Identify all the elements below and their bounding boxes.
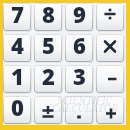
button[interactable]: multiply <box>96 34 126 64</box>
staticText: 9 <box>73 3 86 27</box>
staticText: 3 <box>73 65 86 89</box>
button[interactable]: dot <box>65 96 95 126</box>
button[interactable]: 6 <box>65 34 95 64</box>
button[interactable]: minus <box>96 65 126 95</box>
button[interactable]: 9 <box>65 3 95 33</box>
staticText: 0 <box>11 96 24 120</box>
staticText: 4 <box>11 34 24 58</box>
staticText: 5 <box>42 34 55 58</box>
button[interactable]: plusminus <box>34 96 64 126</box>
staticText: SCIENTIFIC <box>57 93 112 107</box>
staticText: 7 <box>11 3 24 27</box>
staticText: 2 <box>42 65 55 89</box>
staticText: 1 <box>11 65 24 89</box>
button[interactable]: 5 <box>34 34 64 64</box>
button[interactable]: 1 <box>3 65 33 95</box>
button[interactable]: 0 <box>3 96 33 126</box>
button[interactable]: 2 <box>34 65 64 95</box>
staticText: CALCULATOR <box>52 101 118 115</box>
button[interactable]: 8 <box>34 3 64 33</box>
staticText: 8 <box>42 3 55 27</box>
button[interactable]: 3 <box>65 65 95 95</box>
button[interactable]: divide <box>96 3 126 33</box>
button[interactable]: plus <box>96 96 126 126</box>
staticText: 6 <box>73 34 86 58</box>
button[interactable]: 4 <box>3 34 33 64</box>
button[interactable]: 7 <box>3 3 33 33</box>
